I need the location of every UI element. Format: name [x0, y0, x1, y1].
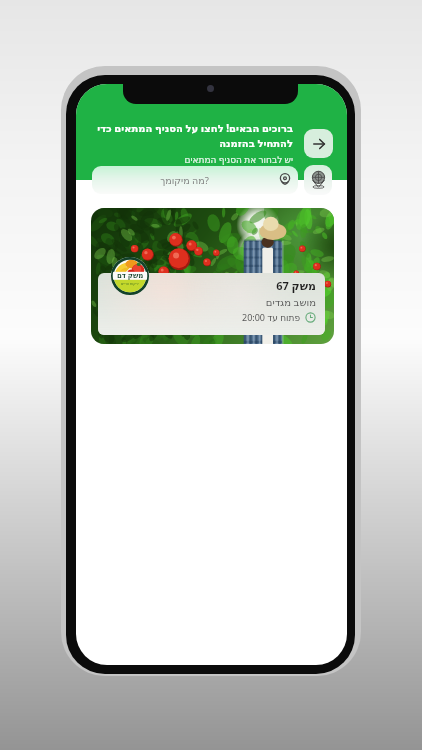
button[interactable]: משק 67 [91, 208, 334, 344]
button[interactable]: My location [304, 165, 332, 195]
staticText: פתוח עד 20:00 [242, 311, 301, 323]
staticText: יש לבחור את הסניף המתאים [91, 153, 293, 165]
staticText: מה מיקומך? [92, 174, 277, 187]
staticText: משק דם [117, 271, 144, 281]
button[interactable]: Continue [304, 129, 333, 158]
staticText: ירקות טריים [121, 281, 139, 286]
button[interactable]: מה מיקומך? [92, 166, 298, 194]
staticText: מושב מגדים [265, 295, 316, 309]
staticText: ברוכים הבאים! לחצו על הסניף המתאים כדי ל… [91, 121, 293, 150]
staticText: משק 67 [276, 278, 316, 293]
